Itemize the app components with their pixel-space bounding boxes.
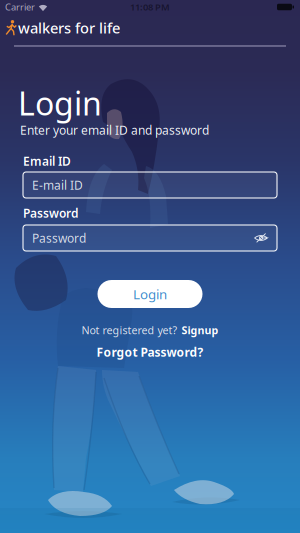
staticText: Password [23, 205, 79, 221]
button[interactable]: Login [97, 280, 202, 308]
button[interactable]: E-mail ID [23, 172, 277, 198]
button[interactable]: Password [23, 225, 277, 251]
staticText: 11:08 PM [130, 1, 170, 13]
button[interactable]: Forgot Password? [96, 344, 203, 360]
staticText: Forgot Password? [96, 344, 203, 360]
staticText: Signup [181, 323, 218, 337]
staticText: Enter your email ID and password [20, 122, 209, 138]
staticText: walkers for life [18, 18, 120, 37]
staticText: Carrier [5, 1, 35, 13]
staticText: Email ID [23, 153, 71, 169]
staticText: E-mail ID [32, 177, 83, 193]
staticText: Login [133, 285, 167, 303]
button[interactable]: Signup [181, 323, 218, 337]
staticText: Password [32, 230, 86, 246]
staticText: Login [18, 82, 102, 124]
staticText: Not registered yet? [81, 323, 177, 337]
